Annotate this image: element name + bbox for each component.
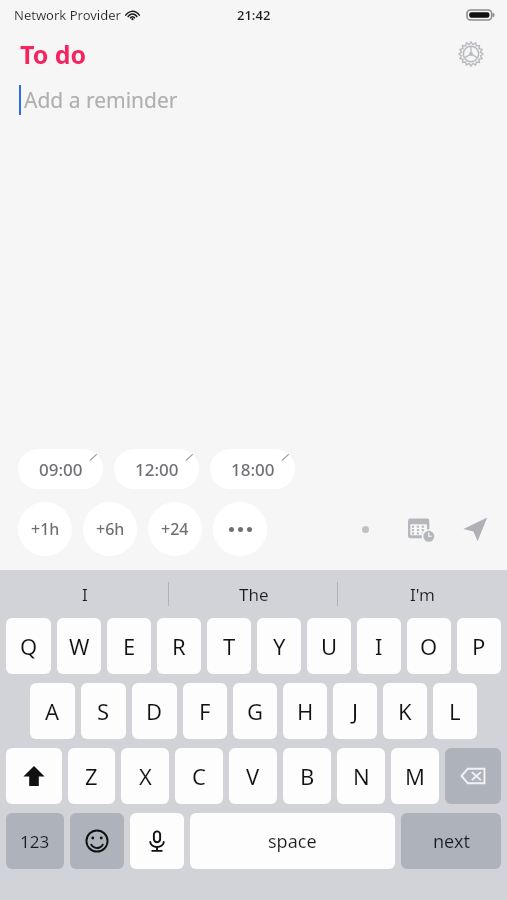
button[interactable]: 12:00 — [114, 449, 199, 489]
staticText: G — [247, 696, 264, 726]
button[interactable]: V — [229, 748, 277, 804]
button[interactable]: More options — [213, 502, 267, 556]
staticText: 18:00 — [231, 458, 275, 481]
staticText: +6h — [96, 518, 125, 540]
staticText: A — [45, 696, 60, 726]
button[interactable]: C — [175, 748, 223, 804]
button[interactable]: I — [357, 618, 401, 674]
staticText: 09:00 — [39, 458, 83, 481]
staticText: C — [192, 761, 206, 791]
button[interactable]: +6h — [83, 502, 137, 556]
staticText: S — [97, 696, 110, 726]
button[interactable]: Q — [6, 618, 51, 674]
staticText: F — [199, 696, 211, 726]
staticText: M — [405, 761, 425, 791]
button[interactable]: Y — [257, 618, 301, 674]
button[interactable]: space — [190, 813, 395, 869]
button[interactable]: I — [0, 582, 169, 606]
staticText: Add a reminder — [24, 86, 178, 115]
button[interactable]: 123 — [6, 813, 64, 869]
button[interactable]: N — [337, 748, 385, 804]
button[interactable]: The — [169, 582, 338, 606]
staticText: Q — [20, 631, 38, 661]
staticText: V — [246, 761, 260, 791]
button[interactable]: J — [333, 683, 377, 739]
button[interactable]: Voice input — [130, 813, 184, 869]
staticText: The — [239, 583, 269, 606]
button[interactable]: P — [457, 618, 501, 674]
staticText: R — [172, 631, 186, 661]
staticText: T — [223, 631, 236, 661]
button[interactable]: W — [57, 618, 101, 674]
button[interactable]: 09:00 — [18, 449, 103, 489]
button[interactable]: L — [433, 683, 477, 739]
staticText: next — [433, 829, 470, 854]
button[interactable]: R — [157, 618, 201, 674]
button[interactable]: E — [107, 618, 151, 674]
button[interactable]: +1h — [18, 502, 72, 556]
button[interactable]: X — [121, 748, 169, 804]
staticText: U — [321, 631, 338, 661]
button[interactable]: Emoji — [70, 813, 124, 869]
button[interactable]: O — [407, 618, 451, 674]
staticText: 12:00 — [135, 458, 179, 481]
staticText: E — [123, 631, 136, 661]
staticText: K — [398, 696, 412, 726]
staticText: +24 — [161, 518, 189, 540]
staticText: B — [300, 761, 315, 791]
staticText: I — [375, 631, 383, 661]
staticText: O — [420, 631, 438, 661]
button[interactable]: 18:00 — [210, 449, 295, 489]
button[interactable]: Backspace — [445, 748, 501, 804]
staticText: W — [69, 631, 90, 661]
button[interactable]: +24 — [148, 502, 202, 556]
button[interactable]: B — [283, 748, 331, 804]
staticText: I'm — [410, 583, 435, 606]
button[interactable]: Z — [68, 748, 115, 804]
staticText: 21:42 — [237, 6, 271, 24]
staticText: To do — [20, 37, 87, 71]
button[interactable]: H — [283, 683, 327, 739]
button[interactable]: M — [391, 748, 439, 804]
button[interactable]: T — [207, 618, 251, 674]
staticText: N — [353, 761, 370, 791]
button[interactable]: F — [183, 683, 227, 739]
button[interactable]: Add a reminder — [0, 78, 507, 122]
button[interactable]: Shift — [6, 748, 62, 804]
staticText: D — [146, 696, 163, 726]
staticText: space — [268, 829, 317, 854]
staticText: H — [297, 696, 314, 726]
staticText: Y — [273, 631, 286, 661]
staticText: 123 — [20, 830, 50, 853]
staticText: L — [449, 696, 461, 726]
button[interactable]: S — [81, 683, 126, 739]
button[interactable]: I'm — [338, 583, 507, 606]
button[interactable]: A — [30, 683, 75, 739]
staticText: J — [352, 696, 359, 726]
button[interactable]: Settings — [451, 34, 491, 74]
button[interactable]: Send — [457, 511, 493, 547]
staticText: Network Provider — [14, 6, 121, 24]
button[interactable]: next — [401, 813, 501, 869]
button[interactable]: U — [307, 618, 351, 674]
button[interactable]: K — [383, 683, 427, 739]
staticText: I — [82, 583, 88, 606]
staticText: +1h — [31, 518, 60, 540]
staticText: P — [472, 631, 486, 661]
button[interactable]: G — [233, 683, 277, 739]
staticText: Z — [85, 761, 98, 791]
staticText: X — [139, 761, 152, 791]
button[interactable]: D — [132, 683, 177, 739]
button[interactable]: Pick date and time — [403, 511, 439, 547]
